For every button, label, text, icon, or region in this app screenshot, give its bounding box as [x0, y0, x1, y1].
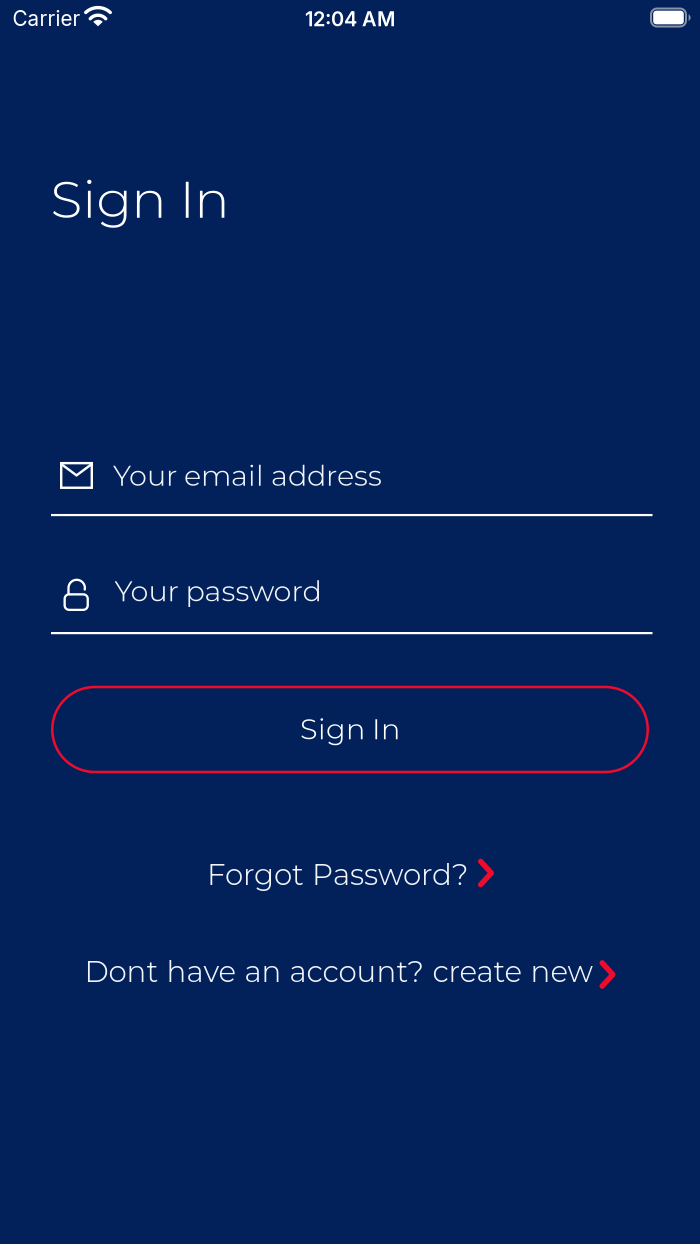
staticText: Your email address: [113, 458, 382, 493]
staticText: Sign In: [50, 167, 229, 231]
button[interactable]: Dont have an account? create new: [84, 954, 615, 989]
button[interactable]: Your email address: [51, 452, 652, 516]
button[interactable]: Forgot Password?: [207, 857, 494, 892]
staticText: 12:04 AM: [305, 7, 395, 31]
button[interactable]: Your password: [51, 568, 652, 634]
staticText: Carrier: [12, 6, 80, 31]
staticText: Your password: [114, 573, 321, 608]
staticText: Forgot Password?: [207, 857, 469, 892]
staticText: Sign In: [300, 711, 400, 746]
button[interactable]: Sign In: [51, 686, 649, 773]
staticText: Dont have an account? create new: [84, 954, 592, 989]
